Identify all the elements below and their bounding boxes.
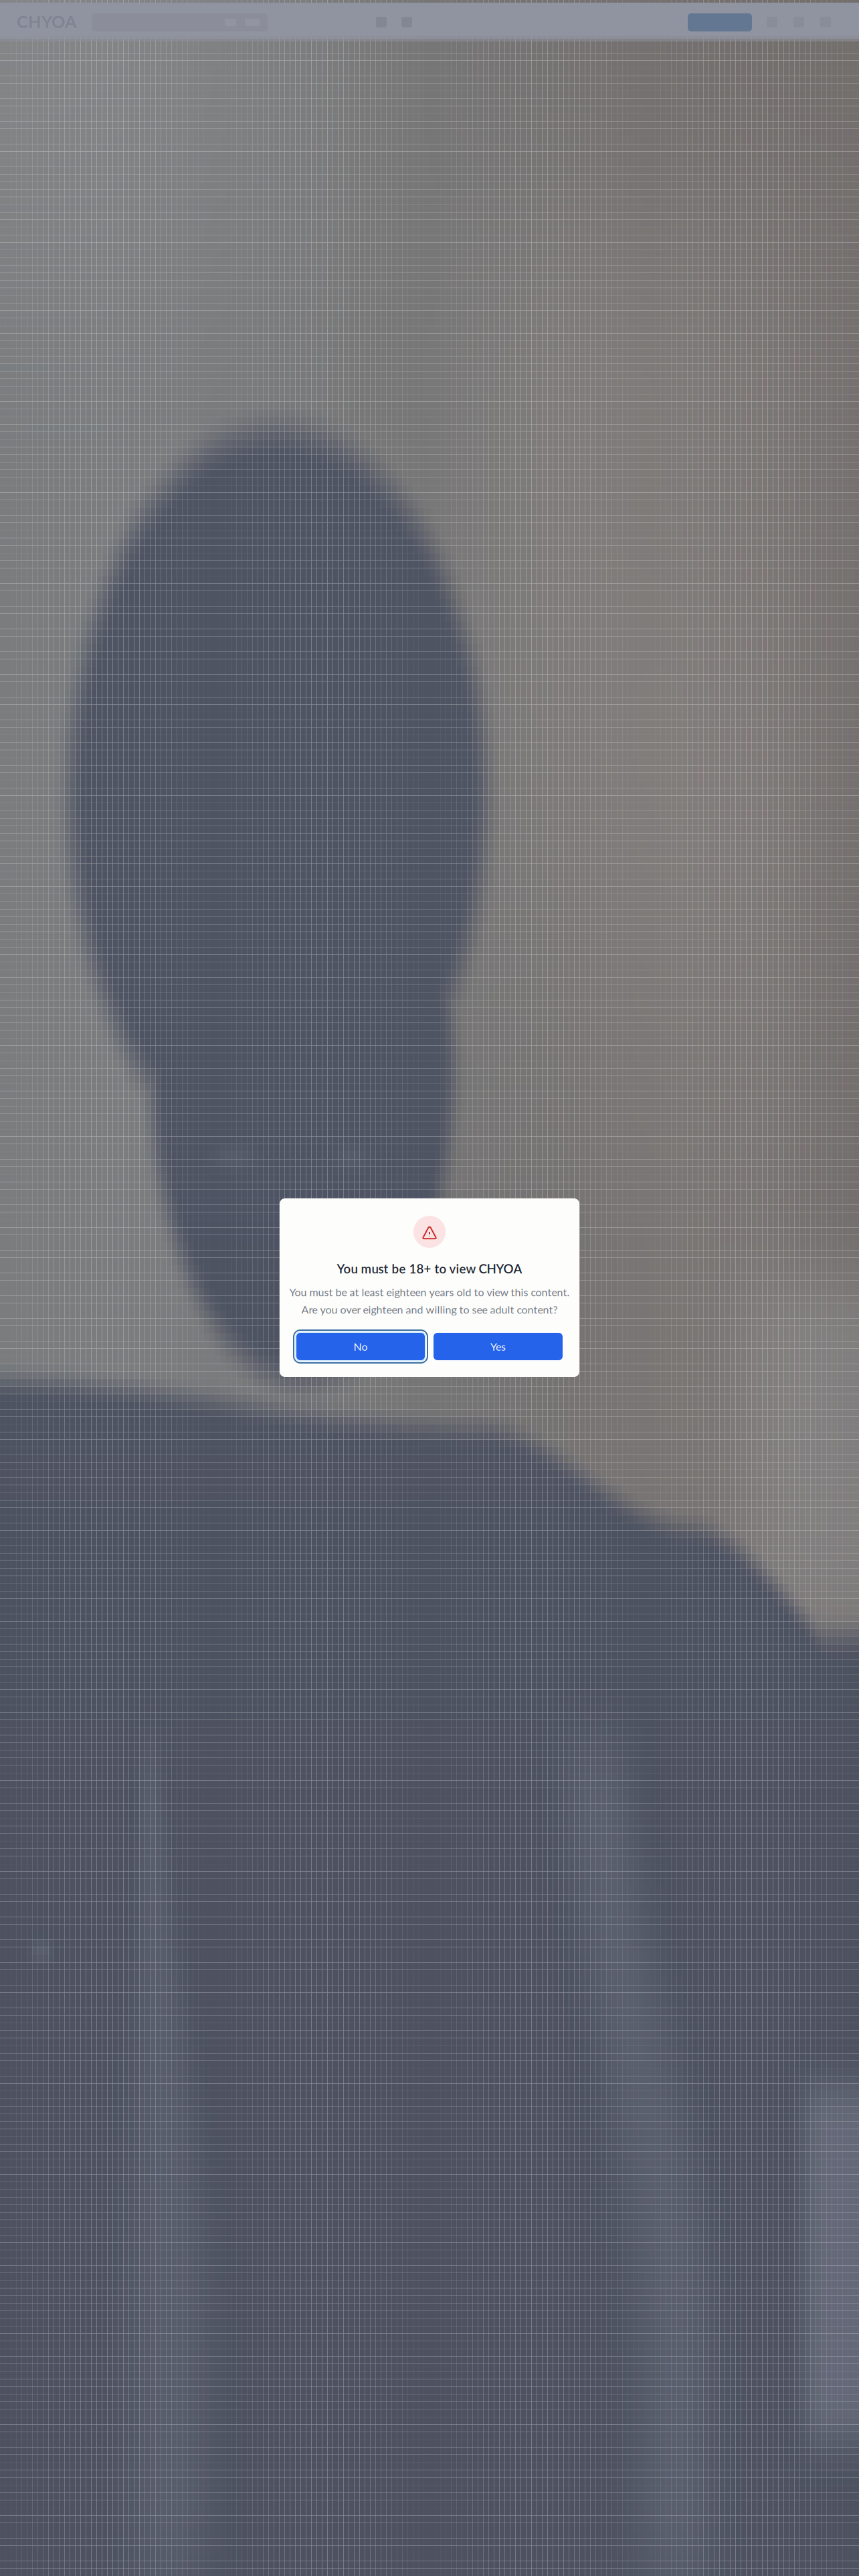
button[interactable]: CHYOA xyxy=(21,13,73,29)
button[interactable]: Yes xyxy=(434,1333,563,1360)
button[interactable]: Sign up xyxy=(688,13,752,31)
staticText: No xyxy=(354,1340,368,1353)
staticText: CHYOA xyxy=(17,11,77,32)
staticText: You must be 18+ to view CHYOA xyxy=(337,1261,522,1276)
staticText: Yes xyxy=(490,1340,506,1353)
staticText: You must be at least eighteen years old … xyxy=(289,1286,570,1298)
button[interactable]: No xyxy=(294,1330,427,1363)
button[interactable]: Random story xyxy=(401,17,412,27)
staticText: Are you over eighteen and willing to see… xyxy=(301,1303,558,1316)
